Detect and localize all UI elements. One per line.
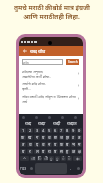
staticText: स [60, 149, 63, 154]
button[interactable]: Keyboard tool [74, 116, 77, 119]
staticText: भ [72, 142, 75, 147]
button[interactable]: भ [71, 142, 76, 147]
staticText: जोडा मराठी शब्द जोडून व व्याकरण शोधा [22, 94, 76, 99]
button[interactable]: 5 [47, 128, 52, 133]
button[interactable]: व [41, 149, 46, 154]
button[interactable]: 6 [53, 128, 58, 133]
button[interactable]: स [59, 149, 64, 154]
button[interactable]: Keyboard tool [61, 116, 64, 119]
button[interactable]: ध [41, 142, 46, 147]
button[interactable]: 9 [71, 128, 76, 133]
button[interactable]: शब्द [22, 59, 63, 65]
staticText: द [36, 142, 39, 147]
staticText: य [22, 149, 25, 154]
staticText: कृती... [22, 86, 31, 91]
button[interactable]: ष [53, 149, 58, 154]
button[interactable]: ि [37, 156, 42, 161]
button[interactable]: 2 [27, 128, 33, 133]
staticText: ळ [72, 149, 76, 154]
button[interactable]: श [47, 149, 52, 154]
staticText: शब्दाचा अनुवाद [22, 69, 43, 74]
button[interactable]: शब्दात [67, 121, 77, 126]
button[interactable]: ह [65, 149, 70, 154]
button[interactable]: 4 [41, 128, 46, 133]
button[interactable]: ै [67, 156, 72, 161]
button[interactable]: त [20, 142, 26, 147]
button[interactable]: ग [34, 135, 40, 140]
staticText: ज [60, 135, 63, 140]
button[interactable]: ब [65, 142, 70, 147]
staticText: ै [68, 156, 71, 161]
staticText: ू [56, 156, 59, 161]
staticText: म [78, 142, 81, 147]
button[interactable]: जोडा मराठी शब्द जोडून व व्याकरण शोधा [19, 92, 83, 105]
button[interactable]: Back [21, 46, 28, 56]
button[interactable]: 8 [65, 128, 70, 133]
staticText: असलेल्या अर्थी शोधा.. [22, 74, 52, 79]
staticText: 7 [60, 128, 63, 133]
button[interactable]: Symbols [20, 163, 27, 174]
staticText: च [48, 135, 51, 140]
button[interactable]: अर्थाचे शब्द शोधा. [19, 79, 83, 92]
button[interactable]: म [77, 142, 82, 147]
staticText: े [62, 156, 65, 161]
button[interactable]: ज [59, 135, 64, 140]
button[interactable]: े [61, 156, 66, 161]
button[interactable]: ळ [71, 149, 76, 154]
button[interactable]: Keyboard tool [22, 116, 25, 119]
staticText: 1 [22, 128, 25, 133]
button[interactable]: ी [43, 156, 48, 161]
button[interactable]: थ [27, 142, 33, 147]
staticText: 3 [36, 128, 39, 133]
staticText: झ [66, 135, 70, 140]
button[interactable]: ु [49, 156, 54, 161]
staticText: अर्थाचे शब्द शोधा. [22, 81, 46, 86]
button[interactable]: 7 [59, 128, 64, 133]
button[interactable]: न [47, 142, 52, 147]
staticText: ह [66, 149, 69, 154]
staticText: ठ [78, 135, 81, 140]
button[interactable]: शब्दी [53, 121, 61, 126]
button[interactable]: Search [66, 59, 79, 65]
button[interactable]: ा [30, 156, 36, 161]
staticText: शब्द [23, 60, 29, 65]
button[interactable]: ल [34, 149, 40, 154]
button[interactable]: क्ष [77, 149, 82, 154]
staticText: 4 [42, 128, 45, 133]
staticText: 6 [54, 128, 57, 133]
button[interactable]: 3 [34, 128, 40, 133]
button[interactable]: ट [71, 135, 76, 140]
staticText: ट [72, 135, 75, 140]
button[interactable]: प [53, 142, 58, 147]
button[interactable]: फ [59, 142, 64, 147]
button[interactable]: Enter [75, 163, 82, 174]
button[interactable]: 0 [77, 128, 82, 133]
button[interactable]: ख [27, 135, 33, 140]
staticText: र [29, 149, 31, 154]
button[interactable]: छ [53, 135, 58, 140]
button[interactable]: च [47, 135, 52, 140]
staticText: ध [42, 142, 45, 147]
button[interactable]: ू [55, 156, 60, 161]
button[interactable]: Emoji [28, 163, 34, 174]
button[interactable]: शब्द [25, 121, 32, 126]
button[interactable]: Shift [20, 156, 29, 161]
button[interactable]: Keyboard tool [35, 116, 38, 119]
button[interactable]: ठ [77, 135, 82, 140]
button[interactable]: र [27, 149, 33, 154]
button[interactable]: शब्दा [38, 121, 46, 126]
staticText: न [48, 142, 51, 147]
button[interactable]: 1 [20, 128, 26, 133]
button[interactable]: Period [68, 163, 74, 174]
staticText: फ [60, 142, 64, 147]
button[interactable]: य [20, 149, 26, 154]
staticText: ?123 [20, 167, 27, 171]
button[interactable]: घ [41, 135, 46, 140]
button[interactable]: झ [65, 135, 70, 140]
button[interactable]: Backspace [73, 156, 82, 161]
button[interactable]: शब्दाचा अनुवाद [19, 68, 83, 79]
button[interactable]: द [34, 142, 40, 147]
button[interactable]: Keyboard tool [48, 116, 51, 119]
button[interactable]: क [20, 135, 26, 140]
